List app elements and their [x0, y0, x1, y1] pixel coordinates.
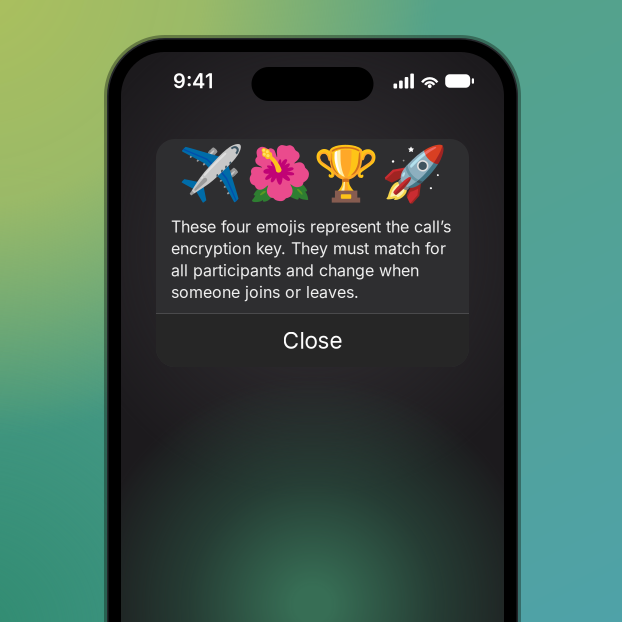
staticText: ✈️ — [178, 143, 244, 204]
staticText: 🚀 — [381, 143, 447, 204]
staticText: These four emojis represent the call’s e… — [171, 217, 451, 302]
staticText: 🏆 — [313, 143, 379, 204]
staticText: 9:41 — [173, 69, 213, 93]
staticText: Close — [282, 327, 342, 354]
button[interactable]: Close — [156, 314, 469, 367]
staticText: 🌺 — [246, 143, 312, 204]
